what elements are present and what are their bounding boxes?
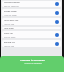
button[interactable]: Evening run (2, 40, 61, 47)
button[interactable]: Morning standup (2, 1, 61, 7)
other: Open item (55, 20, 59, 24)
staticText: Client call (4, 32, 13, 35)
staticText: 1:00 PM Cafe (4, 23, 15, 25)
staticText: Morning standup (4, 1, 20, 4)
staticText: Design review (4, 10, 17, 13)
staticText: 7:00 PM Park (4, 45, 15, 47)
staticText: Upgrade to Premium (20, 58, 45, 61)
button[interactable]: Client call (2, 31, 61, 38)
staticText: 9:00 AM Team sync (4, 5, 19, 7)
other: Open item (55, 42, 59, 46)
button[interactable]: Later today (2, 27, 61, 29)
button[interactable]: Lunch with Alex (2, 18, 61, 25)
staticText: 11:30 AM Studio (4, 14, 17, 16)
staticText: Later today (4, 27, 14, 29)
staticText: Lunch with Alex (4, 19, 19, 22)
other: Open item (55, 33, 59, 37)
staticText: Unlock all features (24, 62, 42, 65)
other: Open item (55, 2, 59, 6)
button[interactable]: Design review (2, 9, 61, 16)
button[interactable]: Upgrade to Premium (0, 56, 64, 72)
other: Open item (55, 11, 59, 15)
staticText: Evening run (4, 41, 15, 44)
staticText: 3:15 PM Zoom (4, 36, 16, 38)
